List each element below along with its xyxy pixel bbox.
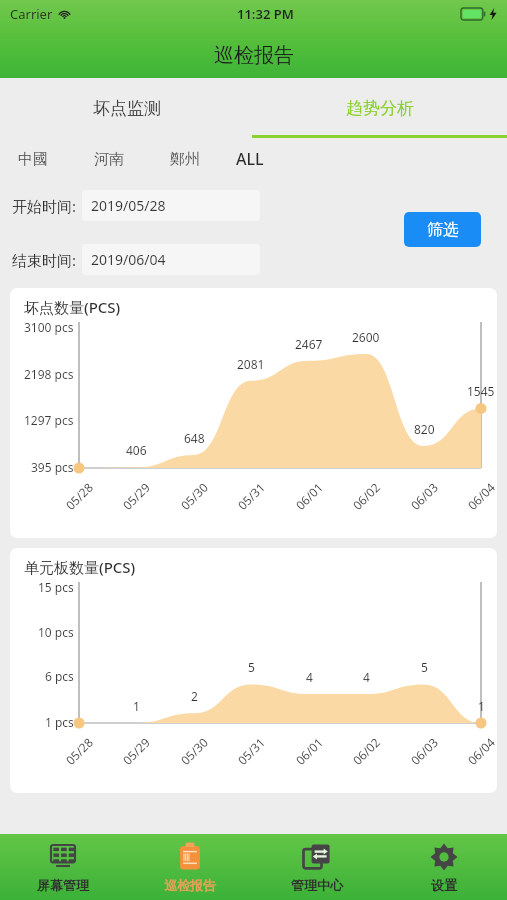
button[interactable]: 坏点监测 bbox=[0, 78, 253, 138]
staticText: 单元板数量(PCS) bbox=[24, 557, 136, 577]
staticText: 820 bbox=[414, 421, 435, 437]
staticText: 2467 bbox=[295, 336, 323, 352]
button[interactable]: 2019/06/04 bbox=[82, 244, 260, 275]
staticText: 巡检报告 bbox=[214, 43, 294, 68]
button[interactable]: 趋势分析 bbox=[253, 78, 507, 138]
staticText: 4 bbox=[363, 669, 370, 685]
staticText: 05/29 bbox=[119, 734, 153, 768]
staticText: 2 bbox=[191, 688, 198, 704]
staticText: 管理中心 bbox=[291, 877, 343, 893]
button[interactable]: 2019/05/28 bbox=[82, 190, 260, 221]
staticText: 开始时间: bbox=[12, 196, 77, 216]
staticText: 中國 bbox=[18, 150, 48, 169]
staticText: 趋势分析 bbox=[346, 98, 414, 119]
button[interactable]: 巡检报告 bbox=[126, 834, 253, 900]
button[interactable]: 管理中心 bbox=[253, 834, 380, 900]
staticText: 06/03 bbox=[407, 734, 441, 768]
staticText: 巡检报告 bbox=[164, 877, 216, 893]
staticText: 鄭州 bbox=[170, 150, 200, 169]
staticText: 648 bbox=[184, 430, 205, 446]
staticText: 10 pcs bbox=[38, 624, 74, 640]
staticText: 1 pcs bbox=[45, 714, 74, 730]
staticText: 395 pcs bbox=[31, 459, 74, 475]
staticText: 406 bbox=[126, 442, 147, 458]
button[interactable]: 河南 bbox=[90, 144, 128, 175]
staticText: 坏点数量(PCS) bbox=[24, 297, 121, 317]
staticText: 1545 bbox=[467, 383, 495, 399]
button[interactable]: 单元板数量(PCS) bbox=[10, 548, 497, 793]
staticText: 06/02 bbox=[349, 479, 383, 513]
staticText: 4 bbox=[306, 669, 313, 685]
staticText: 2600 bbox=[352, 329, 380, 345]
staticText: 屏幕管理 bbox=[37, 877, 89, 893]
staticText: Carrier bbox=[10, 5, 53, 23]
staticText: 06/01 bbox=[292, 734, 326, 768]
staticText: 11:32 PM bbox=[237, 5, 294, 23]
button[interactable]: 中國 bbox=[14, 144, 52, 175]
staticText: 1 bbox=[478, 698, 485, 714]
staticText: 2019/06/04 bbox=[91, 250, 166, 269]
button[interactable]: ALL bbox=[232, 142, 268, 176]
staticText: 05/30 bbox=[177, 479, 211, 513]
staticText: 6 pcs bbox=[45, 668, 74, 684]
staticText: 06/02 bbox=[349, 734, 383, 768]
staticText: 结束时间: bbox=[12, 250, 77, 270]
staticText: 河南 bbox=[94, 150, 124, 169]
button[interactable]: 屏幕管理 bbox=[0, 834, 126, 900]
staticText: 坏点监测 bbox=[93, 98, 161, 119]
button[interactable]: 坏点数量(PCS) bbox=[10, 288, 497, 538]
staticText: 05/31 bbox=[234, 479, 268, 513]
staticText: 1 bbox=[133, 698, 140, 714]
staticText: 5 bbox=[248, 659, 255, 675]
staticText: 1297 pcs bbox=[24, 412, 74, 428]
button[interactable]: 鄭州 bbox=[166, 144, 204, 175]
staticText: 设置 bbox=[431, 877, 457, 893]
staticText: 5 bbox=[421, 659, 428, 675]
staticText: 05/29 bbox=[119, 479, 153, 513]
staticText: 05/28 bbox=[62, 734, 96, 768]
staticText: 3100 pcs bbox=[24, 319, 74, 335]
staticText: 06/03 bbox=[407, 479, 441, 513]
staticText: ALL bbox=[236, 148, 264, 170]
button[interactable]: 设置 bbox=[380, 834, 507, 900]
staticText: 06/01 bbox=[292, 479, 326, 513]
staticText: 06/04 bbox=[464, 734, 497, 768]
button[interactable]: 筛选 bbox=[404, 212, 481, 247]
staticText: 06/04 bbox=[464, 479, 497, 513]
staticText: 15 pcs bbox=[38, 579, 74, 595]
staticText: 筛选 bbox=[427, 220, 459, 240]
staticText: 2081 bbox=[237, 356, 265, 372]
staticText: 05/31 bbox=[234, 734, 268, 768]
staticText: 05/28 bbox=[62, 479, 96, 513]
staticText: 05/30 bbox=[177, 734, 211, 768]
staticText: 2198 pcs bbox=[24, 366, 74, 382]
staticText: 2019/05/28 bbox=[91, 196, 166, 215]
